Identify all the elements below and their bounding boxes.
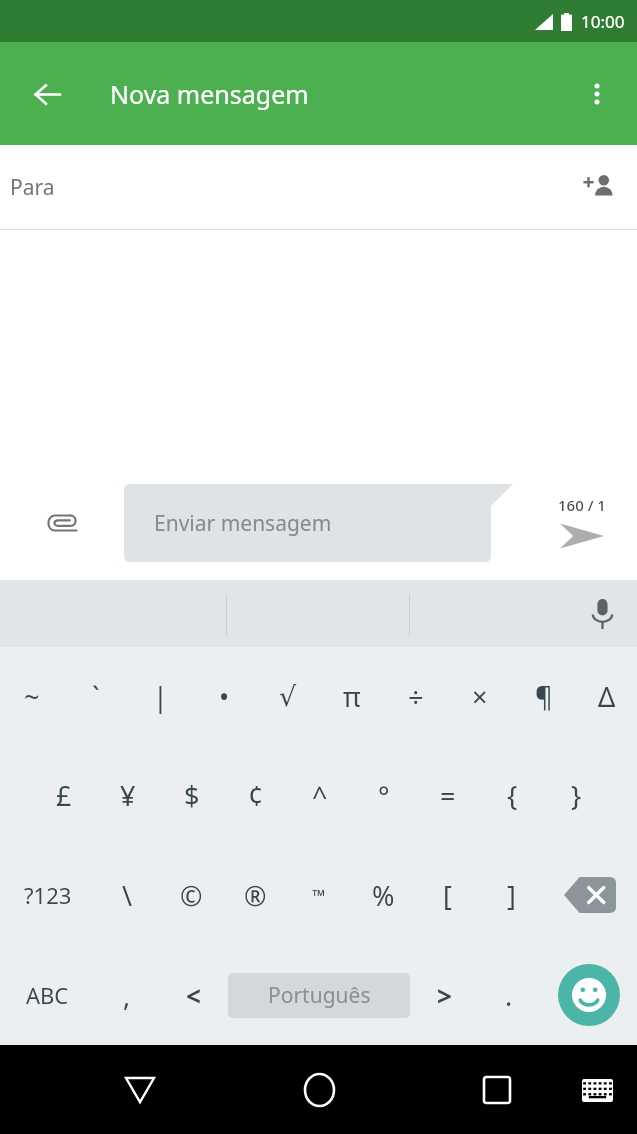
button[interactable]: •: [192, 647, 256, 746]
button[interactable]: Recent apps: [469, 1062, 525, 1118]
button[interactable]: Enviar mensagem: [124, 484, 513, 562]
staticText: ¢: [248, 777, 264, 814]
button[interactable]: ÷: [384, 647, 448, 746]
staticText: ABC: [26, 980, 69, 1010]
staticText: √: [279, 681, 297, 712]
button[interactable]: ©: [159, 845, 223, 945]
staticText: ,: [123, 977, 131, 1014]
button[interactable]: Para: [0, 145, 637, 230]
button[interactable]: ™: [287, 845, 351, 945]
button[interactable]: Add recipient: [571, 162, 623, 214]
staticText: |: [153, 678, 168, 715]
staticText: \: [122, 877, 133, 914]
staticText: ×: [472, 678, 488, 715]
button[interactable]: ?123: [0, 845, 95, 945]
button[interactable]: {: [480, 746, 544, 845]
button[interactable]: $: [160, 746, 224, 845]
button[interactable]: ¥: [96, 746, 160, 845]
button[interactable]: £: [32, 746, 96, 845]
button[interactable]: >: [410, 945, 478, 1045]
button[interactable]: π: [320, 647, 384, 746]
button[interactable]: ~: [0, 647, 64, 746]
staticText: ÷: [408, 678, 424, 715]
button[interactable]: ]: [479, 845, 543, 945]
button[interactable]: .: [478, 945, 540, 1045]
button[interactable]: ×: [448, 647, 512, 746]
button[interactable]: ¢: [224, 746, 288, 845]
staticText: ¥: [120, 777, 136, 814]
button[interactable]: \: [95, 845, 159, 945]
staticText: Nova mensagem: [110, 77, 309, 111]
staticText: Δ: [598, 678, 616, 715]
staticText: °: [378, 777, 390, 814]
button[interactable]: Hide keyboard: [112, 1062, 168, 1118]
button[interactable]: %: [351, 845, 415, 945]
button[interactable]: Δ: [576, 647, 637, 746]
staticText: >: [437, 978, 452, 1013]
button[interactable]: [: [415, 845, 479, 945]
staticText: .: [505, 977, 513, 1014]
button[interactable]: Back: [18, 65, 76, 123]
staticText: π: [343, 678, 361, 715]
button[interactable]: °: [352, 746, 416, 845]
button[interactable]: ABC: [0, 945, 95, 1045]
staticText: Português: [268, 981, 371, 1010]
staticText: ©: [180, 877, 203, 914]
staticText: $: [184, 777, 200, 814]
staticText: £: [56, 777, 72, 814]
staticText: Enviar mensagem: [154, 509, 332, 538]
staticText: <: [186, 978, 201, 1013]
button[interactable]: ,: [95, 945, 158, 1045]
button[interactable]: }: [544, 746, 608, 845]
button[interactable]: <: [158, 945, 228, 1045]
button[interactable]: Voice input: [577, 589, 627, 639]
staticText: ?123: [24, 880, 72, 910]
button[interactable]: Emoji: [540, 945, 637, 1045]
staticText: }: [571, 777, 582, 814]
button[interactable]: =: [416, 746, 480, 845]
button[interactable]: `: [64, 647, 128, 746]
button[interactable]: ¶: [512, 647, 576, 746]
staticText: ~: [24, 678, 40, 715]
button[interactable]: Attach: [36, 496, 90, 550]
button[interactable]: ®: [223, 845, 287, 945]
staticText: =: [440, 777, 456, 814]
button[interactable]: Backspace: [543, 845, 637, 945]
staticText: ®: [244, 877, 267, 914]
button[interactable]: Switch keyboard: [571, 1064, 623, 1116]
staticText: •: [219, 678, 230, 715]
button[interactable]: Português: [228, 973, 410, 1018]
staticText: %: [372, 877, 395, 914]
staticText: 10:00: [581, 10, 625, 33]
staticText: {: [507, 777, 518, 814]
button[interactable]: Send: [537, 495, 627, 551]
staticText: [: [443, 877, 452, 914]
staticText: ]: [507, 877, 516, 914]
staticText: 160 / 1: [558, 495, 606, 515]
button[interactable]: Home: [291, 1062, 347, 1118]
staticText: ^: [312, 777, 328, 814]
staticText: Para: [10, 173, 55, 202]
staticText: ¶: [535, 678, 553, 715]
button[interactable]: More options: [569, 66, 625, 122]
staticText: `: [92, 678, 100, 715]
button[interactable]: ^: [288, 746, 352, 845]
button[interactable]: |: [128, 647, 192, 746]
staticText: ™: [312, 884, 326, 907]
button[interactable]: √: [256, 647, 320, 746]
